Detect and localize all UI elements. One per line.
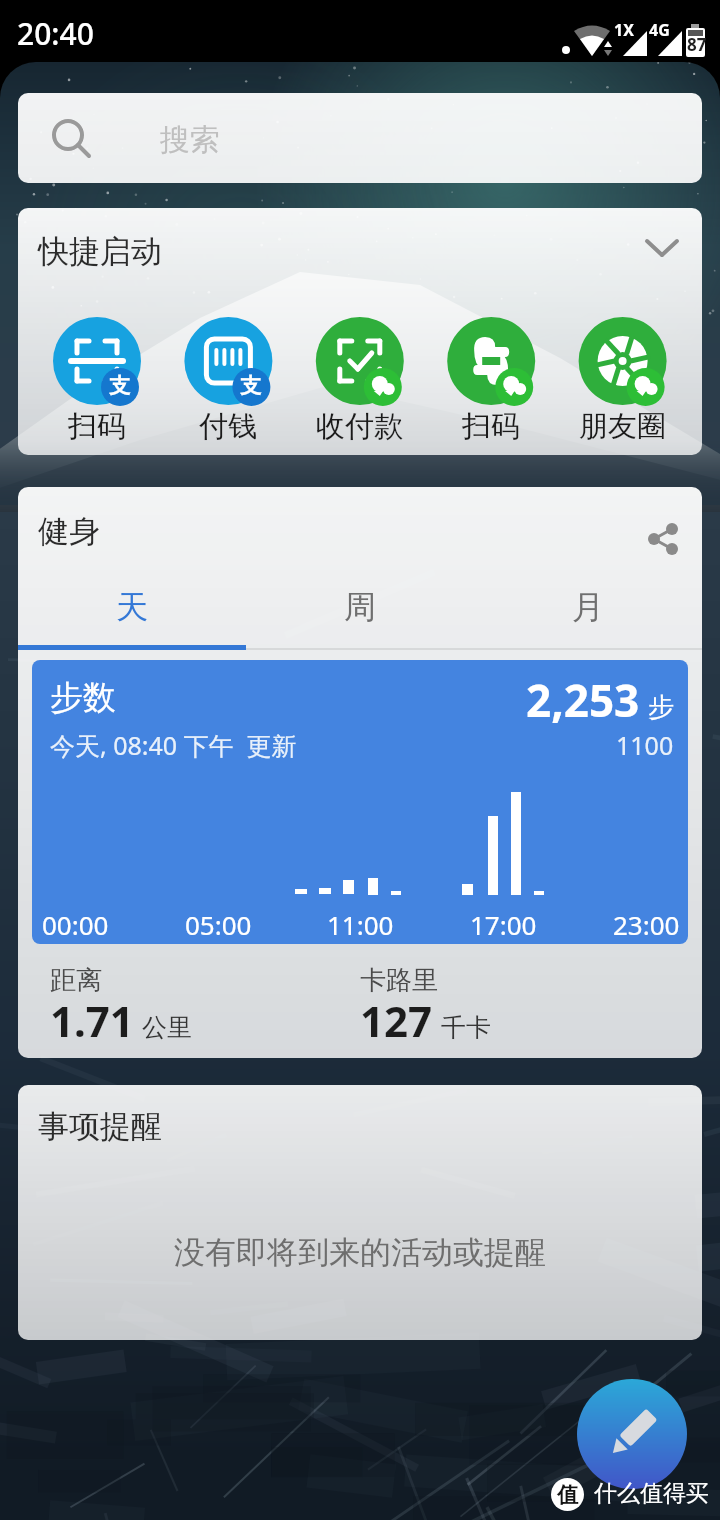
button[interactable]: 步数 [32, 660, 688, 944]
button[interactable] [18, 577, 246, 650]
staticText: 扫码 [68, 408, 126, 445]
staticText: 搜索 [160, 121, 220, 159]
staticText: 收付款 [316, 408, 403, 445]
button[interactable] [567, 313, 677, 448]
button[interactable] [474, 577, 702, 650]
staticText: 00:00 [42, 907, 109, 942]
staticText: 今天, 08:40 下午 更新 [50, 728, 297, 762]
button[interactable] [246, 577, 474, 650]
staticText: 天 [116, 587, 148, 627]
staticText: 1X [614, 19, 634, 41]
staticText: 朋友圈 [579, 408, 666, 445]
staticText: 20:40 [17, 13, 94, 54]
staticText: 没有即将到来的活动或提醒 [174, 1233, 546, 1272]
button[interactable] [577, 1379, 687, 1489]
staticText: 千卡 [441, 1012, 491, 1043]
staticText: 快捷启动 [38, 232, 162, 271]
staticText: 支 [240, 373, 261, 399]
staticText: 付钱 [199, 408, 257, 445]
staticText: 87 [687, 33, 707, 56]
staticText: 值 [557, 1482, 578, 1508]
staticText: 步数 [50, 677, 116, 719]
staticText: 什么值得买 [594, 1479, 709, 1508]
staticText: 月 [572, 587, 604, 627]
button[interactable] [304, 313, 414, 448]
staticText: 23:00 [613, 907, 680, 942]
staticText: 17:00 [470, 907, 537, 942]
staticText: 1.71 [50, 992, 134, 1049]
button[interactable]: 搜索 [18, 93, 702, 183]
staticText: 127 [360, 992, 433, 1049]
button[interactable]: 事项提醒 [18, 1085, 702, 1340]
staticText: 事项提醒 [38, 1107, 162, 1146]
staticText: 周 [344, 587, 376, 627]
staticText: 距离 [50, 964, 102, 997]
staticText: 4G [649, 19, 670, 41]
button[interactable] [173, 313, 283, 448]
staticText: 05:00 [185, 907, 252, 942]
button[interactable] [632, 218, 692, 278]
staticText: 公里 [142, 1012, 192, 1043]
button[interactable] [642, 503, 702, 563]
button[interactable] [42, 313, 152, 448]
staticText: 11:00 [327, 907, 394, 942]
staticText: 扫码 [462, 408, 520, 445]
staticText: 卡路里 [360, 964, 438, 997]
staticText: 健身 [38, 512, 100, 551]
button[interactable] [436, 313, 546, 448]
staticText: 1100 [616, 728, 674, 762]
staticText: 支 [109, 373, 130, 399]
staticText: 步 [648, 691, 674, 724]
staticText: 2,253 [526, 670, 640, 730]
